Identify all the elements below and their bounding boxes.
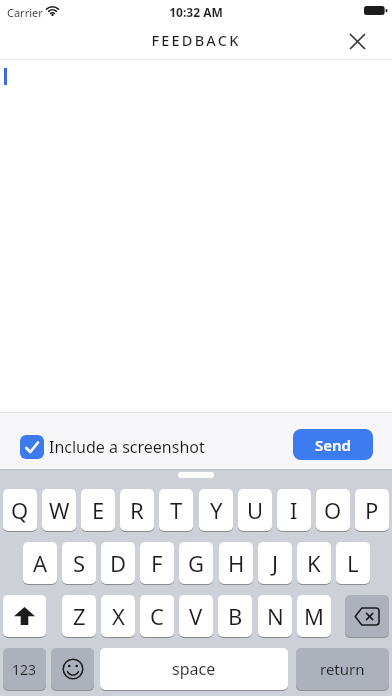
button[interactable]: T bbox=[159, 489, 193, 531]
button[interactable] bbox=[345, 595, 389, 637]
button[interactable]: S bbox=[62, 542, 96, 584]
button[interactable]: P bbox=[355, 489, 389, 531]
staticText: G bbox=[188, 548, 205, 578]
button[interactable]: E bbox=[81, 489, 115, 531]
staticText: W bbox=[49, 495, 70, 525]
button[interactable]: space bbox=[100, 648, 288, 690]
staticText: M bbox=[304, 601, 324, 631]
staticText: N bbox=[267, 601, 284, 631]
button[interactable]: H bbox=[219, 542, 253, 584]
button[interactable]: G bbox=[179, 542, 213, 584]
staticText: FEEDBACK bbox=[0, 30, 392, 50]
button[interactable]: N bbox=[258, 595, 292, 637]
button[interactable] bbox=[340, 24, 374, 58]
button[interactable]: R bbox=[120, 489, 154, 531]
button[interactable]: C bbox=[140, 595, 174, 637]
button[interactable]: Z bbox=[62, 595, 96, 637]
staticText: E bbox=[92, 495, 105, 525]
staticText: H bbox=[228, 548, 245, 578]
staticText: P bbox=[365, 495, 379, 525]
staticText: U bbox=[247, 495, 264, 525]
button[interactable] bbox=[3, 595, 46, 637]
staticText: J bbox=[272, 548, 279, 578]
staticText: Q bbox=[11, 495, 29, 525]
staticText: 123 bbox=[12, 660, 37, 679]
button[interactable]: Send bbox=[293, 429, 373, 460]
staticText: R bbox=[130, 495, 144, 525]
staticText: F bbox=[151, 548, 163, 578]
button[interactable]: J bbox=[258, 542, 292, 584]
staticText: K bbox=[307, 548, 321, 578]
staticText: T bbox=[170, 495, 183, 525]
staticText: V bbox=[189, 601, 203, 631]
button[interactable]: D bbox=[101, 542, 135, 584]
button[interactable]: X bbox=[101, 595, 135, 637]
button[interactable]: F bbox=[140, 542, 174, 584]
button[interactable]: L bbox=[336, 542, 370, 584]
staticText: space bbox=[172, 658, 216, 680]
button[interactable]: U bbox=[238, 489, 272, 531]
button[interactable]: return bbox=[296, 648, 389, 690]
staticText: Include a screenshot bbox=[49, 436, 205, 458]
button[interactable]: O bbox=[316, 489, 350, 531]
staticText: L bbox=[347, 548, 359, 578]
staticText: 10:32 AM bbox=[0, 4, 392, 20]
button[interactable]: K bbox=[297, 542, 331, 584]
staticText: C bbox=[150, 601, 164, 631]
button[interactable]: A bbox=[23, 542, 57, 584]
button[interactable]: Include a screenshot bbox=[12, 424, 202, 464]
staticText: O bbox=[324, 495, 342, 525]
button[interactable]: 123 bbox=[3, 648, 46, 690]
staticText: Y bbox=[210, 495, 223, 525]
staticText: D bbox=[110, 548, 127, 578]
staticText: Send bbox=[315, 435, 351, 455]
button[interactable]: M bbox=[297, 595, 331, 637]
button[interactable]: W bbox=[42, 489, 76, 531]
button[interactable] bbox=[51, 648, 94, 690]
button[interactable]: V bbox=[179, 595, 213, 637]
staticText: B bbox=[228, 601, 243, 631]
staticText: A bbox=[33, 548, 48, 578]
staticText: I bbox=[290, 495, 298, 525]
staticText: Carrier bbox=[7, 5, 43, 20]
staticText: Z bbox=[73, 601, 86, 631]
staticText: S bbox=[73, 548, 86, 578]
staticText: X bbox=[112, 601, 125, 631]
button[interactable]: B bbox=[218, 595, 252, 637]
button[interactable]: I bbox=[277, 489, 311, 531]
staticText: return bbox=[320, 659, 365, 679]
button[interactable]: Y bbox=[199, 489, 233, 531]
button[interactable]: Q bbox=[3, 489, 37, 531]
